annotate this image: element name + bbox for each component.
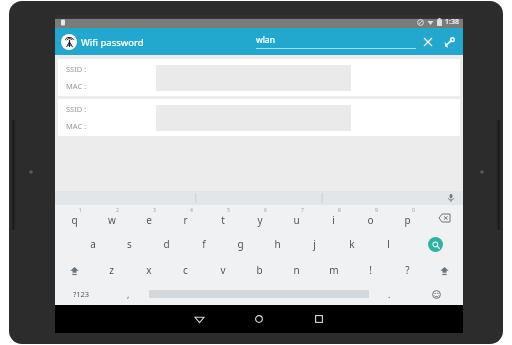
button[interactable]: h (259, 231, 296, 257)
staticText: 2 (116, 207, 119, 214)
staticText: n (293, 263, 300, 277)
button[interactable]: ? (389, 257, 426, 283)
staticText: Wifi password (81, 36, 144, 49)
staticText: 5 (227, 207, 230, 214)
button[interactable]: SSID : (58, 99, 460, 136)
staticText: b (256, 263, 263, 277)
staticText: 9 (375, 207, 378, 214)
button[interactable]: d (148, 231, 185, 257)
staticText: w (108, 213, 116, 227)
button[interactable]: n (278, 257, 315, 283)
button[interactable]: Shift (426, 257, 463, 283)
button[interactable]: 0 (389, 205, 426, 231)
staticText: q (71, 213, 78, 227)
staticText: l (387, 237, 390, 251)
button[interactable]: Search (407, 231, 463, 257)
staticText: c (183, 263, 188, 277)
staticText: ? (405, 263, 410, 277)
button[interactable]: 3 (130, 205, 167, 231)
button[interactable]: Home (229, 305, 289, 333)
button[interactable]: c (167, 257, 204, 283)
staticText: j (313, 237, 316, 251)
staticText: m (329, 263, 339, 277)
staticText: z (109, 263, 114, 277)
button[interactable]: s (111, 231, 148, 257)
button[interactable]: ! (352, 257, 389, 283)
button[interactable]: Recent apps (289, 305, 349, 333)
staticText: o (367, 213, 374, 227)
button[interactable]: 2 (93, 205, 130, 231)
button[interactable]: b (241, 257, 278, 283)
staticText: r (183, 213, 188, 227)
staticText: wlan (256, 34, 275, 46)
staticText: 8 (338, 207, 341, 214)
button[interactable]: m (315, 257, 352, 283)
button[interactable]: , (108, 283, 149, 305)
button[interactable]: 1 (55, 205, 93, 231)
staticText: SSID : (66, 104, 87, 114)
staticText: 1:38 (445, 17, 459, 27)
button[interactable]: Settings (441, 34, 457, 50)
button[interactable]: . (369, 283, 410, 305)
staticText: p (404, 213, 411, 227)
staticText: 4 (190, 207, 193, 214)
staticText: , (127, 288, 130, 300)
button[interactable]: Clear search (420, 34, 436, 50)
button[interactable]: k (333, 231, 370, 257)
button[interactable]: 5 (204, 205, 241, 231)
button[interactable]: j (296, 231, 333, 257)
staticText: f (202, 237, 206, 251)
staticText: y (257, 213, 263, 227)
button[interactable]: v (204, 257, 241, 283)
button[interactable]: Backspace (426, 205, 463, 231)
staticText: t (221, 213, 225, 227)
button[interactable]: Emoji (410, 283, 463, 305)
button[interactable]: ?123 (55, 283, 108, 305)
button[interactable]: SSID : (58, 59, 460, 96)
staticText: a (90, 237, 96, 251)
staticText: h (274, 237, 281, 251)
staticText: s (127, 237, 132, 251)
button[interactable]: x (130, 257, 167, 283)
staticText: u (293, 213, 300, 227)
staticText: ?123 (73, 289, 90, 299)
staticText: 3 (153, 207, 156, 214)
button[interactable]: z (93, 257, 130, 283)
button[interactable]: Voice input (445, 192, 457, 204)
staticText: ! (369, 263, 372, 277)
staticText: 0 (412, 207, 415, 214)
button[interactable]: Shift (55, 257, 93, 283)
button[interactable]: g (222, 231, 259, 257)
staticText: 7 (301, 207, 304, 214)
button[interactable]: 6 (241, 205, 278, 231)
button[interactable]: l (370, 231, 407, 257)
staticText: 6 (264, 207, 267, 214)
staticText: MAC : (66, 81, 87, 91)
staticText: SSID : (66, 64, 87, 74)
staticText: x (146, 263, 152, 277)
staticText: k (349, 237, 355, 251)
button[interactable]: Wifi password (61, 34, 144, 50)
staticText: . (388, 288, 391, 300)
button[interactable]: 4 (167, 205, 204, 231)
staticText: v (220, 263, 226, 277)
button[interactable]: 7 (278, 205, 315, 231)
button[interactable]: 9 (352, 205, 389, 231)
staticText: d (163, 237, 170, 251)
staticText: i (332, 213, 335, 227)
staticText: e (146, 213, 152, 227)
button[interactable]: Back (169, 305, 229, 333)
button[interactable]: a (74, 231, 111, 257)
button[interactable]: f (185, 231, 222, 257)
staticText: 1 (79, 207, 82, 214)
staticText: g (237, 237, 244, 251)
button[interactable]: 8 (315, 205, 352, 231)
staticText: MAC : (66, 121, 87, 131)
